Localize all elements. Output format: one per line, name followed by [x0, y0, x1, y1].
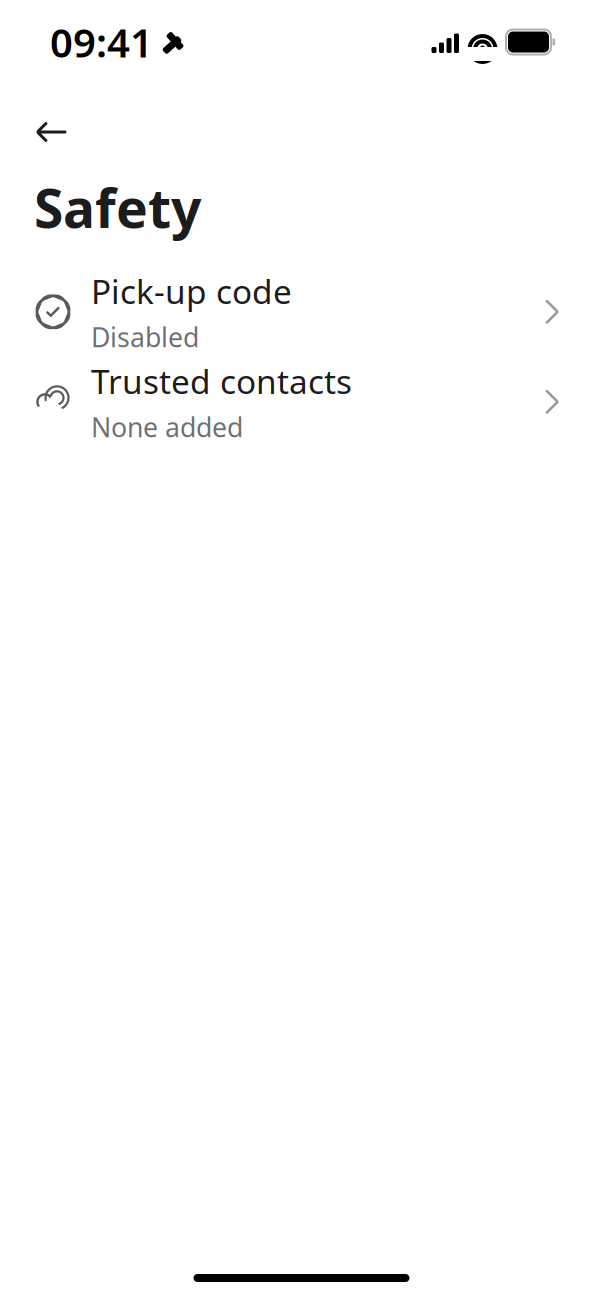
staticText: None added [91, 409, 243, 445]
staticText: Trusted contacts [91, 359, 352, 403]
button[interactable]: Back [0, 110, 89, 154]
staticText: 09:41 [50, 15, 153, 68]
staticText: Disabled [91, 319, 199, 355]
button[interactable]: Pick-up code [0, 273, 603, 351]
staticText: Pick-up code [91, 269, 292, 313]
button[interactable]: Trusted contacts [0, 363, 603, 441]
staticText: Safety [34, 172, 201, 243]
